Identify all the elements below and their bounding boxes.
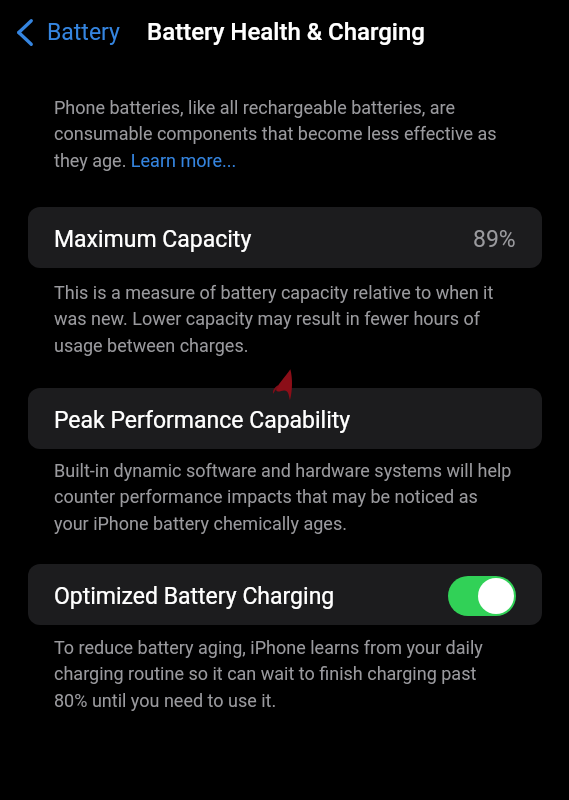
staticText: Peak Performance Capability <box>54 407 351 434</box>
staticText: To reduce battery aging, iPhone learns f… <box>54 637 513 712</box>
staticText: Optimized Battery Charging <box>54 583 335 610</box>
staticText: Maximum Capacity <box>54 226 252 253</box>
button[interactable]: Optimized Battery Charging <box>28 564 542 625</box>
staticText: 89% <box>473 226 516 253</box>
staticText: Battery Health & Charging <box>147 18 425 46</box>
staticText: Phone batteries, like all rechargeable b… <box>54 97 513 172</box>
staticText: Battery <box>47 19 120 46</box>
other: Back <box>17 20 32 45</box>
button[interactable]: Optimized Battery Charging <box>448 576 516 616</box>
button[interactable]: Peak Performance Capability <box>28 388 542 449</box>
staticText: This is a measure of battery capacity re… <box>54 282 513 357</box>
staticText: Built-in dynamic software and hardware s… <box>54 460 513 535</box>
button[interactable]: Maximum Capacity <box>28 207 542 268</box>
button[interactable]: Back <box>17 15 128 50</box>
